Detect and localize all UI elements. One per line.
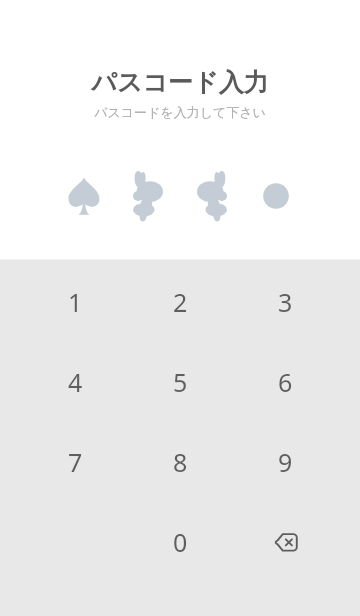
staticText: 2 bbox=[173, 285, 188, 319]
button[interactable]: 1 bbox=[22, 262, 128, 342]
button[interactable]: 9 bbox=[233, 422, 338, 502]
button[interactable]: 3 bbox=[233, 262, 338, 342]
staticText: 0 bbox=[173, 525, 188, 559]
staticText: パスコード入力 bbox=[91, 67, 269, 98]
staticText: パスコードを入力して下さい bbox=[94, 104, 266, 120]
staticText: 1 bbox=[68, 285, 83, 319]
button[interactable]: 0 bbox=[128, 502, 233, 582]
staticText: 5 bbox=[173, 365, 188, 399]
button[interactable]: 8 bbox=[128, 422, 233, 502]
staticText: 9 bbox=[278, 445, 293, 479]
button[interactable]: Delete bbox=[233, 502, 338, 582]
button[interactable]: 2 bbox=[128, 262, 233, 342]
button[interactable]: 5 bbox=[128, 342, 233, 422]
other: Delete bbox=[264, 520, 308, 564]
button[interactable]: 7 bbox=[22, 422, 128, 502]
staticText: 7 bbox=[68, 445, 83, 479]
staticText: 6 bbox=[278, 365, 293, 399]
staticText: 8 bbox=[173, 445, 188, 479]
staticText: 4 bbox=[68, 365, 83, 399]
button[interactable]: 6 bbox=[233, 342, 338, 422]
staticText: 3 bbox=[278, 285, 293, 319]
button[interactable]: 4 bbox=[22, 342, 128, 422]
